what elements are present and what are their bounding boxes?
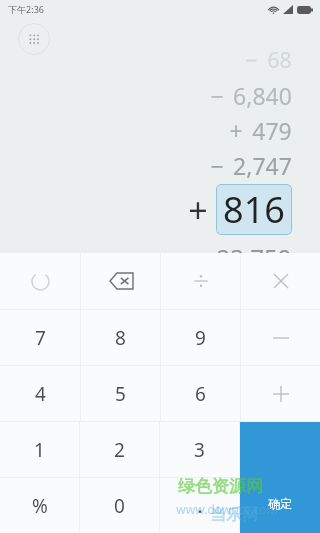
staticText: 当乐网 <box>210 505 258 525</box>
button[interactable]: 2 <box>80 422 159 477</box>
staticText: 0 <box>114 493 125 519</box>
button[interactable]: 816 <box>216 184 292 235</box>
other: Minus <box>269 326 293 350</box>
staticText: 下午2:36 <box>8 3 44 15</box>
button[interactable]: Plus <box>241 366 320 421</box>
other: Backspace <box>107 267 135 295</box>
other: Clear <box>28 269 52 293</box>
staticText: 5 <box>115 381 126 407</box>
button[interactable]: Backspace <box>81 253 160 309</box>
staticText: 3 <box>194 437 205 463</box>
staticText: − <box>210 80 224 111</box>
staticText: + <box>229 115 243 146</box>
staticText: 9 <box>195 325 206 351</box>
staticText: 479 <box>252 115 292 146</box>
staticText: 1 <box>34 437 45 463</box>
button[interactable]: Clear <box>0 253 80 309</box>
staticText: 6 <box>195 381 206 407</box>
button[interactable]: 确定 <box>240 422 320 533</box>
button[interactable]: 6 <box>161 366 240 421</box>
staticText: . <box>197 493 203 519</box>
staticText: % <box>32 493 48 519</box>
button[interactable]: 8 <box>81 310 160 365</box>
staticText: 6,840 <box>233 80 292 111</box>
staticText: 2,747 <box>233 150 292 181</box>
button[interactable]: 9 <box>161 310 240 365</box>
button[interactable]: 7 <box>0 310 80 365</box>
button[interactable]: 3 <box>160 422 239 477</box>
other: Multiply <box>269 269 293 293</box>
staticText: 23,759 <box>216 241 292 274</box>
button[interactable]: Minus <box>241 310 320 365</box>
staticText: 8 <box>115 325 126 351</box>
button[interactable]: 0 <box>80 478 159 533</box>
staticText: = <box>194 243 207 273</box>
staticText: 816 <box>223 185 285 234</box>
staticText: − <box>245 46 258 75</box>
staticText: 68 <box>267 46 292 75</box>
button[interactable]: % <box>0 478 79 533</box>
staticText: 确定 <box>268 496 292 511</box>
staticText: 4 <box>35 381 46 407</box>
staticText: + <box>188 187 208 233</box>
button[interactable]: 5 <box>81 366 160 421</box>
other: Plus <box>269 382 293 406</box>
button[interactable]: . <box>160 478 239 533</box>
button[interactable]: 4 <box>0 366 80 421</box>
other: Divide <box>189 269 213 293</box>
staticText: 2 <box>114 437 125 463</box>
button[interactable]: 1 <box>0 422 79 477</box>
button[interactable]: App drawer <box>18 23 50 55</box>
staticText: www.downcc.com <box>176 501 278 517</box>
button[interactable]: Divide <box>161 253 240 309</box>
staticText: 绿色资源网 <box>178 476 263 497</box>
staticText: − <box>210 150 224 181</box>
staticText: 7 <box>35 325 46 351</box>
button[interactable]: Multiply <box>241 253 320 309</box>
